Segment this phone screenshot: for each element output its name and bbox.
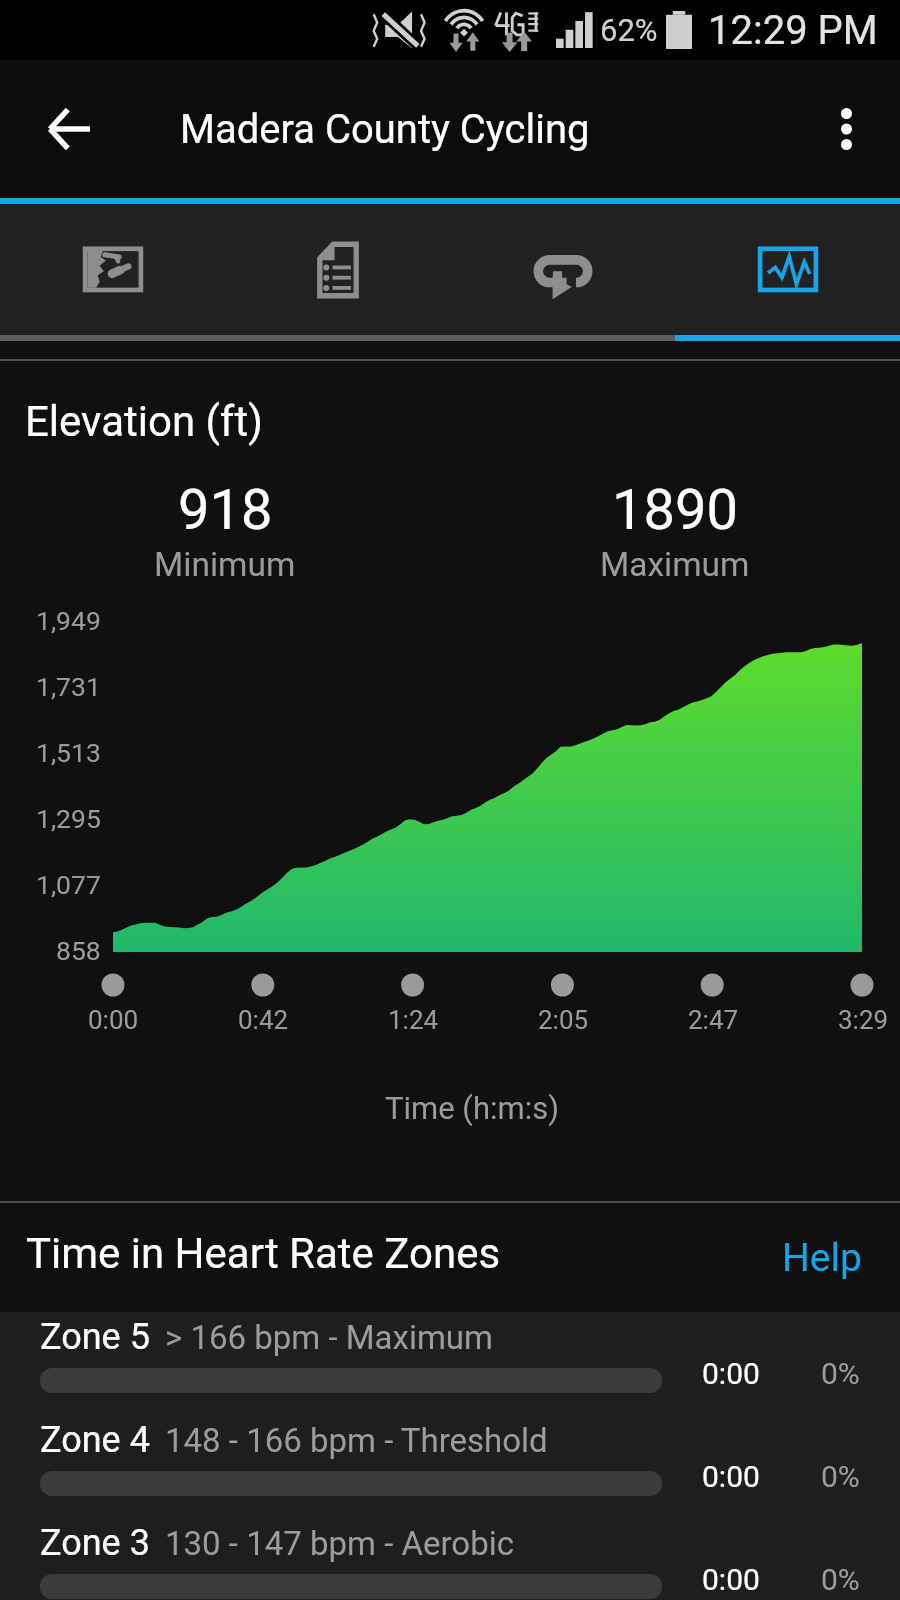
staticText: 0% <box>821 1562 860 1597</box>
staticText: 1,731 <box>36 671 101 702</box>
staticText: Zone 4 <box>40 1419 150 1461</box>
staticText: 148 - 166 bpm - Threshold <box>165 1421 548 1460</box>
button[interactable]: Map <box>0 204 225 335</box>
staticText: 2:47 <box>688 1005 739 1035</box>
staticText: 3:29 <box>838 1005 889 1035</box>
staticText: Help <box>782 1235 862 1281</box>
staticText: Time in Heart Rate Zones <box>26 1229 501 1278</box>
staticText: Minimum <box>154 545 296 584</box>
staticText: Elevation (ft) <box>25 397 263 446</box>
staticText: 0:00 <box>702 1562 760 1597</box>
staticText: Zone 3 <box>40 1522 150 1564</box>
staticText: Madera County Cycling <box>180 106 590 153</box>
staticText: 12:29 PM <box>708 7 878 54</box>
staticText: 0:00 <box>702 1459 760 1494</box>
staticText: 1:24 <box>388 1005 439 1035</box>
staticText: 0:42 <box>238 1005 289 1035</box>
button[interactable]: Back <box>22 81 118 177</box>
staticText: Time (h:m:s) <box>385 1090 560 1126</box>
button[interactable]: Details <box>225 204 450 335</box>
staticText: 130 - 147 bpm - Aerobic <box>165 1524 514 1563</box>
button[interactable]: Zone 4 <box>0 1415 900 1518</box>
staticText: 62% <box>600 12 658 48</box>
staticText: 0% <box>821 1356 860 1391</box>
button[interactable]: Help <box>764 1221 880 1295</box>
staticText: 0% <box>821 1459 860 1494</box>
button[interactable]: Charts <box>675 204 900 335</box>
button[interactable]: Zone 5 <box>0 1312 900 1415</box>
button[interactable]: More options <box>798 81 894 177</box>
staticText: 1,513 <box>36 737 101 768</box>
staticText: 1,077 <box>36 869 101 900</box>
staticText: 2:05 <box>538 1005 589 1035</box>
button[interactable]: Zone 3 <box>0 1518 900 1600</box>
staticText: Maximum <box>600 545 750 584</box>
staticText: > 166 bpm - Maximum <box>165 1318 493 1357</box>
staticText: 0:00 <box>702 1356 760 1391</box>
staticText: 1890 <box>612 477 738 539</box>
staticText: 0:00 <box>88 1005 139 1035</box>
staticText: 1,949 <box>36 605 101 636</box>
staticText: 858 <box>56 935 101 966</box>
staticText: 918 <box>178 477 273 539</box>
staticText: 1,295 <box>36 803 101 834</box>
staticText: Zone 5 <box>40 1316 150 1358</box>
button[interactable]: Laps <box>450 204 675 335</box>
